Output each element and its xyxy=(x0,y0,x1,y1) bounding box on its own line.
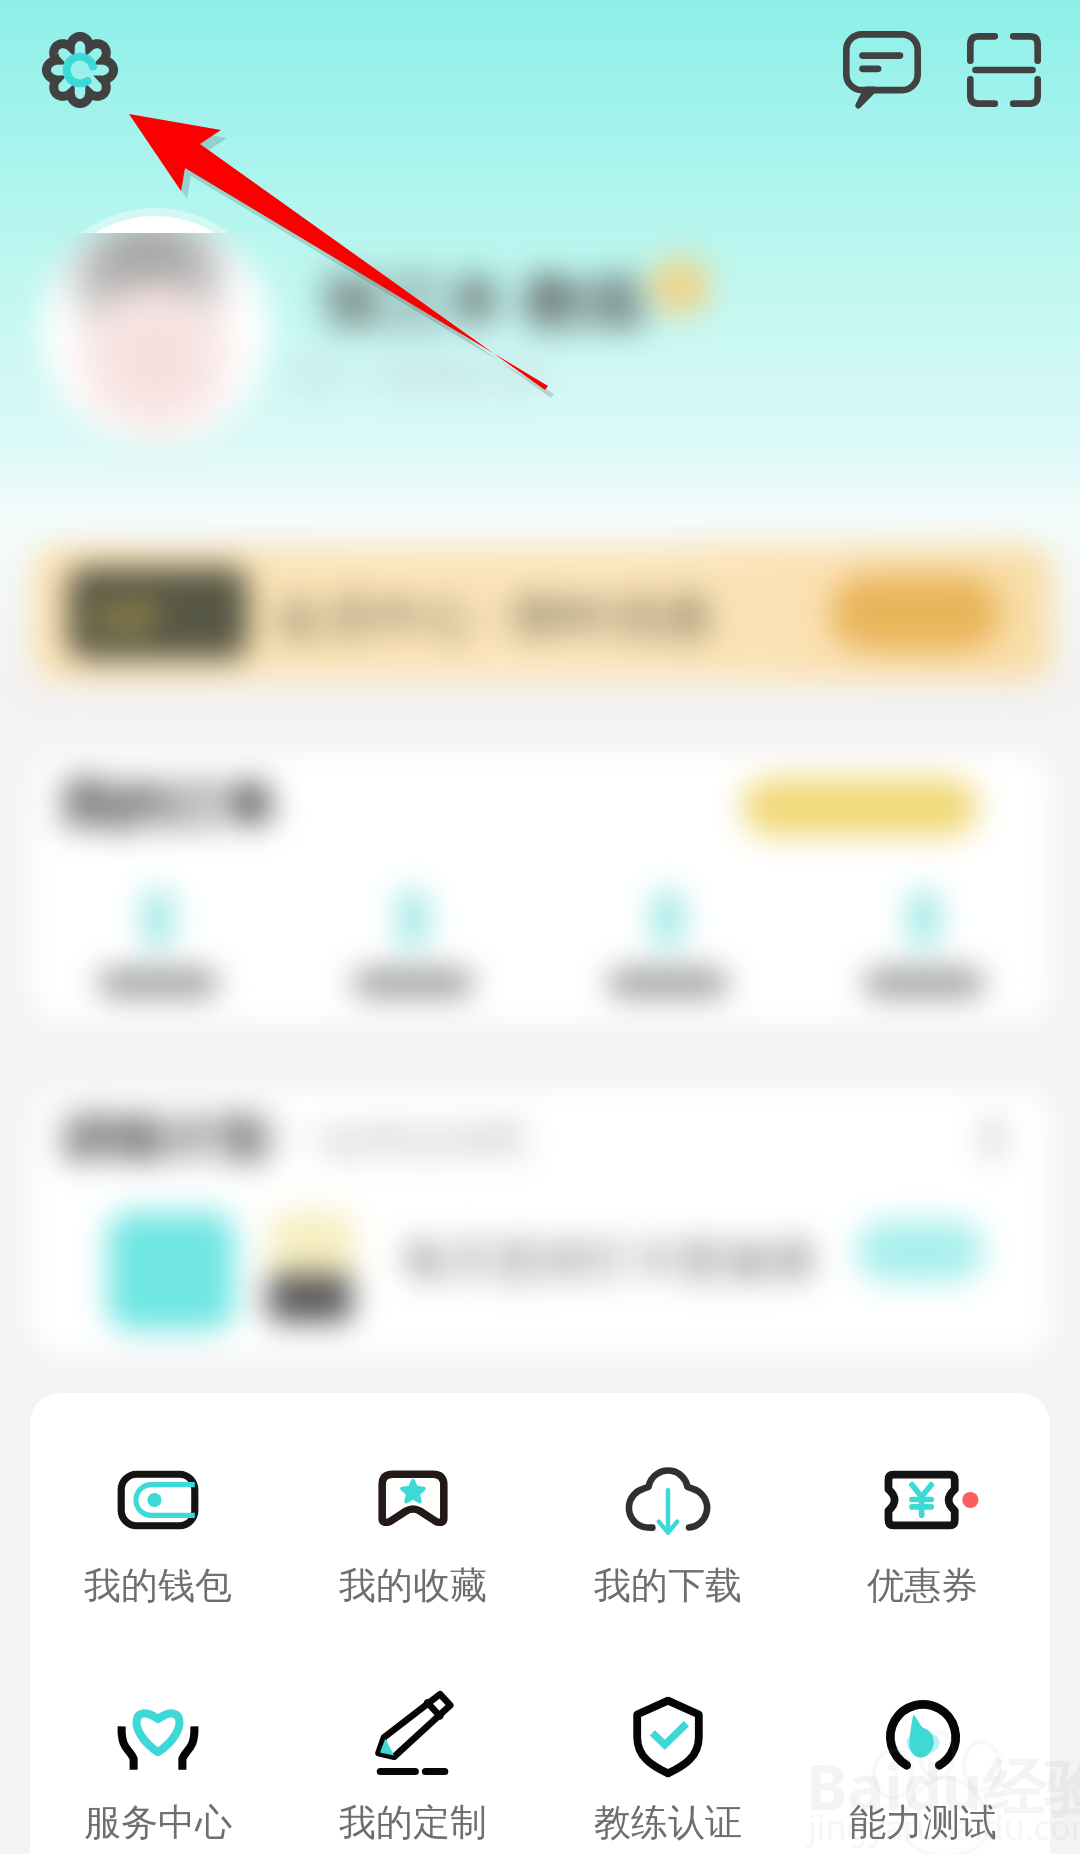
staticText: Baidu经验 xyxy=(806,1744,1080,1829)
button[interactable]: Settings xyxy=(30,20,130,120)
button[interactable]: 我的订单 xyxy=(30,752,1052,1024)
button[interactable] xyxy=(796,890,1052,996)
staticText: 能力测试 xyxy=(849,1799,997,1846)
staticText: 训练计划 xyxy=(60,1106,268,1172)
button[interactable] xyxy=(30,890,285,996)
staticText: 会员中心 · 限时优惠 xyxy=(274,581,714,649)
staticText: 我的订单 xyxy=(60,772,276,840)
button[interactable]: VIP xyxy=(32,545,1052,681)
staticText: 我的定制 xyxy=(339,1799,487,1846)
button[interactable]: 我的钱包 xyxy=(30,1454,285,1609)
staticText: jingyan.baidu.com xyxy=(808,1804,1080,1850)
staticText: 我的下载 xyxy=(594,1562,742,1609)
button[interactable]: 能力测试 xyxy=(795,1691,1050,1846)
button[interactable]: 我的收藏 xyxy=(285,1454,540,1609)
button[interactable]: 服务中心 xyxy=(30,1691,285,1846)
staticText: 教练认证 xyxy=(594,1799,742,1846)
staticText: VIP xyxy=(92,589,159,643)
staticText: 一起来运动吧 xyxy=(286,1114,526,1164)
staticText: 张三丰 教练 xyxy=(320,258,647,343)
button[interactable]: 我的下载 xyxy=(540,1454,795,1609)
button[interactable] xyxy=(540,890,796,996)
staticText: 服务中心 xyxy=(84,1799,232,1846)
button[interactable]: Messages xyxy=(832,20,932,120)
button[interactable]: 我的定制 xyxy=(285,1691,540,1846)
button[interactable]: 优惠券 xyxy=(795,1454,1050,1609)
button[interactable]: Scan QR code xyxy=(954,20,1054,120)
staticText: 每天坚持打卡更健康 xyxy=(402,1232,816,1290)
staticText: 优惠券 xyxy=(867,1562,978,1609)
button[interactable]: Profile avatar xyxy=(41,216,269,444)
staticText: 我的收藏 xyxy=(339,1562,487,1609)
staticText: ID : 10086754 xyxy=(296,348,541,400)
button[interactable]: 训练计划 xyxy=(30,1088,1052,1356)
button[interactable]: 教练认证 xyxy=(540,1691,795,1846)
button[interactable] xyxy=(285,890,540,996)
staticText: 我的钱包 xyxy=(84,1562,232,1609)
other: Pointer annotation xyxy=(0,0,1080,1854)
